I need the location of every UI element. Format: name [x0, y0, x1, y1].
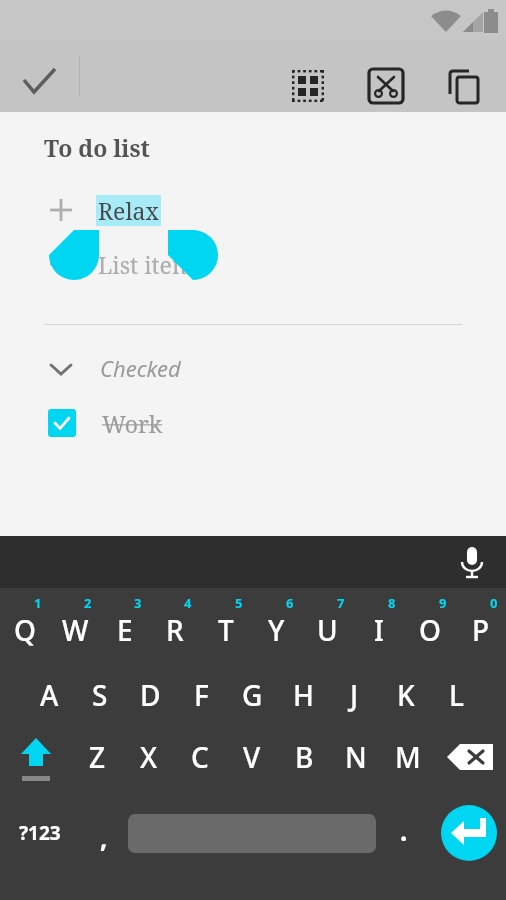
- button[interactable]: Cut: [364, 64, 408, 108]
- button[interactable]: 5: [200, 588, 251, 662]
- button[interactable]: H: [278, 662, 329, 728]
- button[interactable]: V: [226, 728, 278, 798]
- staticText: Y: [268, 611, 285, 649]
- staticText: C: [191, 738, 209, 776]
- button[interactable]: Relax: [0, 183, 506, 237]
- staticText: U: [317, 611, 338, 649]
- staticText: G: [242, 676, 263, 714]
- button[interactable]: 3: [100, 588, 150, 662]
- button[interactable]: M: [382, 728, 434, 798]
- staticText: B: [295, 738, 314, 776]
- staticText: 8: [388, 594, 396, 612]
- button[interactable]: 9: [404, 588, 455, 662]
- staticText: O: [419, 611, 441, 649]
- staticText: List item: [98, 249, 194, 280]
- button[interactable]: A: [24, 662, 74, 728]
- staticText: 5: [235, 594, 243, 612]
- staticText: M: [395, 738, 421, 776]
- button[interactable]: N: [330, 728, 382, 798]
- button[interactable]: Z: [72, 728, 123, 798]
- staticText: 9: [439, 594, 447, 612]
- button[interactable]: G: [227, 662, 278, 728]
- staticText: S: [92, 676, 108, 714]
- staticText: Z: [89, 738, 106, 776]
- button[interactable]: Done: [8, 52, 64, 108]
- button[interactable]: B: [278, 728, 330, 798]
- staticText: Work: [102, 408, 163, 439]
- button[interactable]: 1: [0, 588, 50, 662]
- staticText: J: [350, 676, 359, 714]
- staticText: R: [166, 611, 184, 649]
- button[interactable]: L: [431, 662, 482, 728]
- button[interactable]: 6: [251, 588, 302, 662]
- button[interactable]: 4: [150, 588, 200, 662]
- staticText: 7: [337, 594, 345, 612]
- staticText: 4: [184, 594, 192, 612]
- staticText: 3: [134, 594, 142, 612]
- staticText: 2: [84, 594, 92, 612]
- staticText: V: [243, 738, 261, 776]
- button[interactable]: ,: [80, 798, 128, 868]
- button[interactable]: K: [380, 662, 431, 728]
- button[interactable]: Work: [0, 400, 506, 446]
- button[interactable]: 7: [302, 588, 353, 662]
- staticText: H: [293, 676, 314, 714]
- button[interactable]: D: [125, 662, 176, 728]
- staticText: T: [218, 611, 234, 649]
- button[interactable]: J: [329, 662, 380, 728]
- button[interactable]: 0: [455, 588, 506, 662]
- button[interactable]: 2: [50, 588, 100, 662]
- staticText: W: [62, 611, 89, 649]
- button[interactable]: Space: [128, 798, 376, 868]
- button[interactable]: Backspace: [434, 728, 506, 798]
- button[interactable]: List item: [0, 237, 506, 291]
- staticText: A: [40, 676, 59, 714]
- staticText: D: [140, 676, 161, 714]
- staticText: .: [400, 813, 408, 848]
- staticText: 0: [490, 594, 498, 612]
- button[interactable]: F: [176, 662, 227, 728]
- button[interactable]: .: [376, 798, 432, 868]
- button[interactable]: C: [174, 728, 226, 798]
- button[interactable]: ?123: [0, 798, 80, 868]
- button[interactable]: Checked: [0, 346, 506, 390]
- button[interactable]: Voice input: [448, 538, 496, 586]
- staticText: N: [345, 738, 367, 776]
- button[interactable]: Select all: [286, 64, 330, 108]
- staticText: Q: [14, 611, 36, 649]
- staticText: F: [194, 676, 209, 714]
- staticText: L: [449, 676, 464, 714]
- staticText: ?123: [19, 820, 61, 846]
- button[interactable]: 8: [353, 588, 404, 662]
- staticText: E: [117, 611, 133, 649]
- button[interactable]: Copy: [442, 64, 486, 108]
- button[interactable]: X: [123, 728, 174, 798]
- staticText: P: [472, 611, 490, 649]
- staticText: X: [140, 738, 158, 776]
- staticText: 6: [286, 594, 294, 612]
- staticText: 1: [34, 594, 42, 612]
- button[interactable]: Enter: [432, 798, 506, 868]
- button[interactable]: Shift: [0, 728, 72, 798]
- staticText: I: [374, 611, 384, 649]
- staticText: K: [397, 676, 415, 714]
- button[interactable]: S: [74, 662, 125, 728]
- staticText: To do list: [44, 132, 150, 163]
- staticText: ,: [100, 820, 108, 855]
- staticText: Relax: [98, 195, 159, 226]
- staticText: Checked: [100, 353, 181, 383]
